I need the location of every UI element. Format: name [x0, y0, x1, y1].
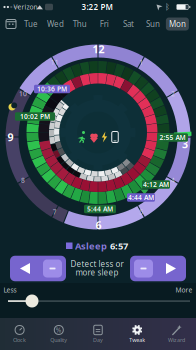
- button[interactable]: Earlier: [10, 256, 66, 281]
- staticText: 10:02 PM: [20, 112, 50, 121]
- staticText: Thu: [73, 19, 87, 29]
- staticText: Verizon: [13, 3, 37, 11]
- staticText: Detect less or: [70, 259, 123, 269]
- button[interactable]: Tweak: [118, 319, 157, 349]
- staticText: 5: [139, 207, 143, 216]
- button[interactable]: Quality: [39, 319, 78, 349]
- staticText: 4:12 AM: [143, 180, 169, 189]
- staticText: 12: [92, 42, 104, 56]
- button[interactable]: Clock: [0, 319, 39, 349]
- button[interactable]: Sun: [141, 17, 165, 31]
- button[interactable]: Sat: [117, 17, 141, 31]
- staticText: Day: [93, 336, 103, 344]
- staticText: 4: [171, 176, 175, 185]
- button[interactable]: Tue: [19, 17, 43, 31]
- button[interactable]: Thu: [68, 17, 92, 31]
- staticText: Quality: [50, 336, 67, 344]
- staticText: Tweak: [129, 336, 145, 344]
- staticText: Wed: [47, 19, 64, 29]
- staticText: 7: [53, 207, 57, 216]
- staticText: 11: [51, 58, 59, 67]
- staticText: More: [175, 286, 192, 294]
- button[interactable]: Calendar: [4, 17, 18, 31]
- button[interactable]: Later: [130, 256, 186, 281]
- staticText: Less: [3, 286, 16, 294]
- staticText: 10:36 PM: [37, 85, 67, 93]
- staticText: 1: [139, 58, 143, 67]
- staticText: 5:44 AM: [87, 205, 113, 213]
- staticText: Tue: [24, 19, 38, 29]
- button[interactable]: Sleep detection sensitivity: [25, 294, 38, 307]
- button[interactable]: Fri: [92, 17, 116, 31]
- staticText: 10: [19, 89, 27, 98]
- staticText: 9: [7, 130, 13, 144]
- button[interactable]: Wed: [43, 17, 67, 31]
- staticText: ᛒ: [165, 3, 170, 11]
- staticText: Sun: [146, 19, 160, 29]
- staticText: 6:57: [110, 240, 128, 252]
- staticText: more sleep: [75, 267, 118, 278]
- staticText: 6: [95, 218, 101, 232]
- staticText: Wizard: [168, 336, 185, 344]
- staticText: 2:55 AM: [159, 133, 185, 142]
- staticText: Clock: [13, 336, 26, 344]
- button[interactable]: Wizard: [157, 319, 196, 349]
- staticText: 3: [182, 137, 188, 151]
- button[interactable]: Day: [78, 319, 118, 349]
- staticText: Sat: [123, 19, 134, 29]
- staticText: 4:44 AM: [128, 193, 154, 202]
- staticText: %: [56, 325, 62, 334]
- staticText: Asleep: [75, 240, 107, 252]
- button[interactable]: Mon: [165, 17, 189, 31]
- staticText: Mon: [169, 19, 186, 29]
- staticText: 2: [171, 89, 175, 98]
- staticText: Fri: [100, 19, 109, 29]
- staticText: 8: [21, 176, 25, 185]
- staticText: 3:22 PM: [81, 2, 112, 12]
